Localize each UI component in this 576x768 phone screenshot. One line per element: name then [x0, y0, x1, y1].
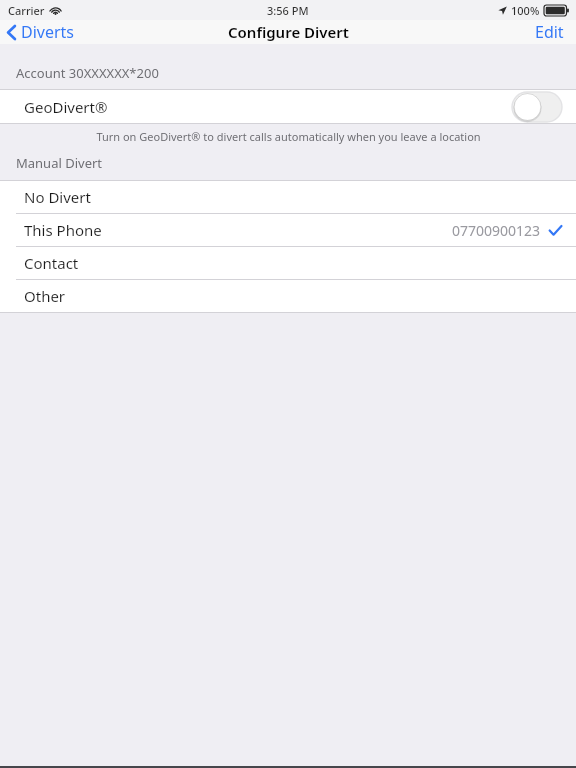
button[interactable]: Diverts — [0, 20, 83, 44]
staticText: 3:56 PM — [267, 3, 309, 18]
button[interactable]: This Phone — [0, 214, 576, 246]
button[interactable]: Contact — [0, 247, 576, 279]
button[interactable]: No Divert — [0, 181, 576, 213]
staticText: Other — [24, 286, 66, 306]
staticText: Edit — [535, 21, 564, 43]
button[interactable]: Edit — [523, 20, 576, 44]
staticText: Account 30XXXXXX*200 — [16, 64, 159, 82]
staticText: Turn on GeoDivert® to divert calls autom… — [96, 129, 481, 144]
staticText: No Divert — [24, 187, 91, 207]
staticText: Carrier — [8, 3, 45, 18]
staticText: Diverts — [21, 21, 75, 43]
button[interactable]: GeoDivert toggle — [512, 92, 562, 122]
button[interactable]: Other — [0, 280, 576, 312]
staticText: 07700900123 — [452, 221, 541, 240]
staticText: Manual Divert — [16, 154, 103, 172]
staticText: 100% — [511, 3, 540, 18]
staticText: Contact — [24, 253, 79, 273]
button[interactable]: GeoDivert® — [0, 89, 576, 124]
staticText: Configure Divert — [228, 22, 349, 42]
staticText: This Phone — [24, 220, 102, 240]
staticText: GeoDivert® — [24, 97, 108, 117]
